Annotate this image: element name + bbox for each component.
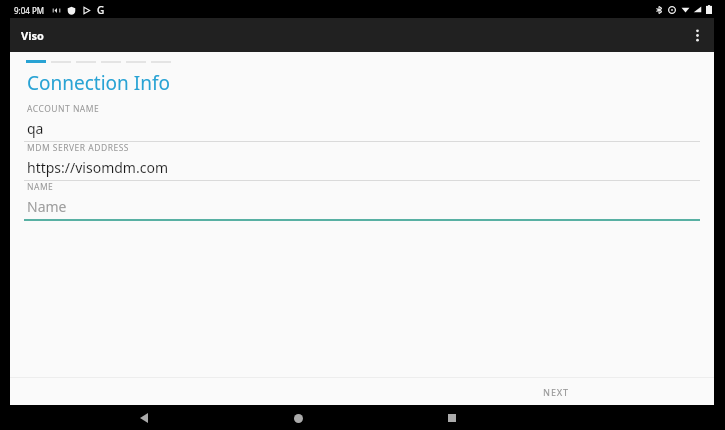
button[interactable]: More options xyxy=(684,22,710,48)
staticText: Connection Info xyxy=(27,70,170,96)
button[interactable]: NEXT xyxy=(543,386,569,398)
staticText: https://visomdm.com xyxy=(27,158,168,177)
staticText: 9:04 PM xyxy=(14,5,45,16)
button[interactable]: ACCOUNT NAME xyxy=(24,103,700,142)
staticText: qa xyxy=(27,119,44,138)
staticText: NEXT xyxy=(543,386,569,398)
button[interactable]: Recent apps xyxy=(440,406,464,430)
button[interactable]: Back xyxy=(132,406,156,430)
staticText: MDM SERVER ADDRESS xyxy=(27,142,130,154)
staticText: NAME xyxy=(27,181,54,193)
staticText: Name xyxy=(27,197,67,216)
staticText: ACCOUNT NAME xyxy=(27,103,100,115)
button[interactable]: Home xyxy=(286,406,310,430)
staticText: G xyxy=(97,3,105,17)
button[interactable]: MDM SERVER ADDRESS xyxy=(24,142,700,181)
button[interactable]: NAME xyxy=(24,181,700,221)
staticText: Viso xyxy=(21,28,44,43)
